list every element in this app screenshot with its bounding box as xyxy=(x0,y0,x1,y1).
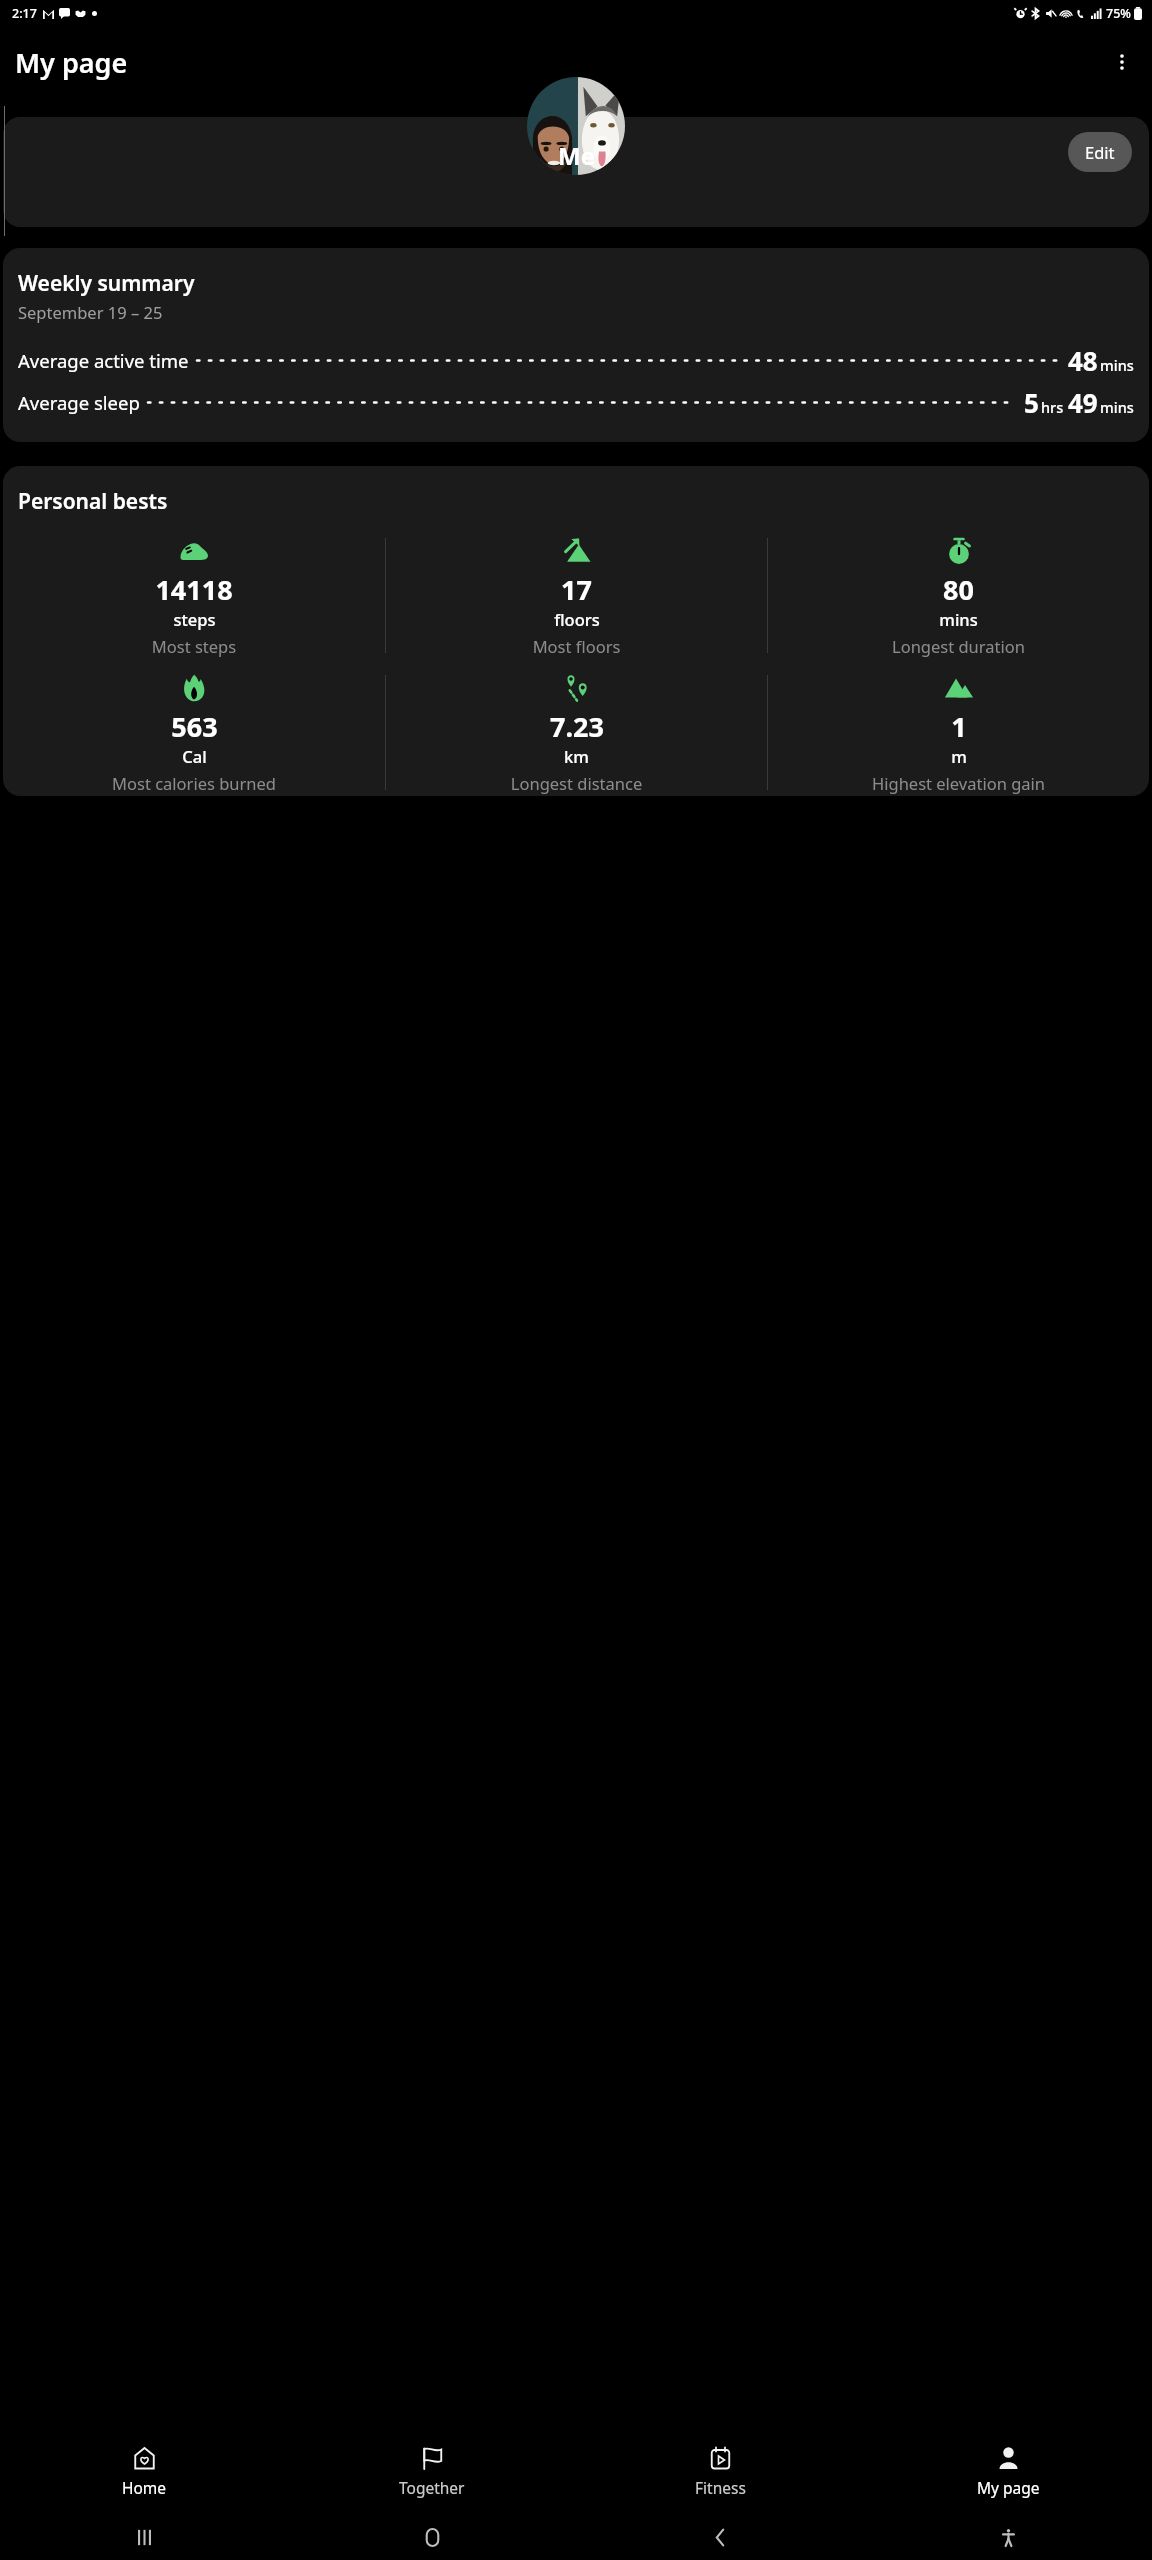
button[interactable]: 1 xyxy=(768,669,1149,796)
button[interactable]: Home xyxy=(412,2517,452,2557)
staticText: Highest elevation gain xyxy=(770,772,1147,794)
staticText: 48 xyxy=(1068,343,1098,378)
staticText: 5 xyxy=(1024,385,1039,420)
button[interactable]: Profile picture xyxy=(527,77,625,175)
staticText: Average active time xyxy=(18,348,189,373)
button[interactable]: Edit xyxy=(1068,132,1132,172)
staticText: m xyxy=(951,745,967,767)
staticText: Together xyxy=(399,2477,465,2498)
staticText: September 19 – 25 xyxy=(18,301,163,323)
staticText: km xyxy=(564,745,589,767)
button[interactable]: Accessibility xyxy=(988,2517,1028,2557)
staticText: My page xyxy=(977,2477,1040,2498)
button[interactable]: My page xyxy=(864,2430,1152,2514)
button[interactable]: Home xyxy=(0,2430,288,2514)
staticText: 7.23 xyxy=(550,708,604,745)
staticText: Edit xyxy=(1085,141,1115,163)
staticText: 75% xyxy=(1106,5,1131,22)
staticText: Fitness xyxy=(695,2477,746,2498)
staticText: steps xyxy=(173,608,216,630)
staticText: Longest duration xyxy=(770,635,1147,657)
staticText: Weekly summary xyxy=(18,269,195,298)
staticText: 1 xyxy=(951,708,967,745)
staticText: mins xyxy=(1100,397,1134,417)
staticText: Home xyxy=(122,2477,167,2498)
staticText: 80 xyxy=(943,571,974,608)
staticText: Most floors xyxy=(388,635,765,657)
staticText: 49 xyxy=(1068,385,1098,420)
staticText: 2:17 xyxy=(12,5,37,22)
button[interactable]: 80 xyxy=(768,532,1149,659)
staticText: Average sleep xyxy=(18,390,140,415)
button[interactable]: Fitness xyxy=(576,2430,864,2514)
button[interactable]: 563 xyxy=(3,669,385,796)
staticText: Personal bests xyxy=(18,487,168,516)
staticText: 563 xyxy=(171,708,218,745)
button[interactable]: Back xyxy=(700,2517,740,2557)
button[interactable]: Weekly summary xyxy=(3,248,1149,442)
staticText: mins xyxy=(939,608,978,630)
button[interactable]: 7.23 xyxy=(386,669,767,796)
staticText: floors xyxy=(554,608,600,630)
staticText: Longest distance xyxy=(388,772,765,794)
staticText: Me xyxy=(558,139,595,172)
staticText: mins xyxy=(1100,355,1134,375)
staticText: hrs xyxy=(1041,397,1064,417)
staticText: Most steps xyxy=(5,635,383,657)
button[interactable]: Together xyxy=(288,2430,576,2514)
button[interactable]: 17 xyxy=(386,532,767,659)
staticText: 17 xyxy=(561,571,592,608)
staticText: 14118 xyxy=(155,571,233,608)
staticText: My page xyxy=(15,44,128,81)
staticText: Most calories burned xyxy=(5,772,383,794)
button[interactable]: More options xyxy=(1098,38,1146,86)
staticText: Cal xyxy=(182,745,207,767)
button[interactable] xyxy=(3,117,1149,227)
button[interactable]: 14118 xyxy=(3,532,385,659)
button[interactable]: Recents xyxy=(124,2517,164,2557)
